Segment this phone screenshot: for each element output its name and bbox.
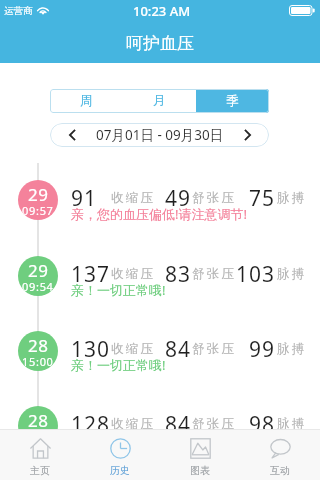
staticText: 收缩压 [111,266,156,282]
staticText: 130 [71,335,111,364]
staticText: 29 [28,183,49,206]
staticText: 月 [153,93,166,109]
staticText: 98 [249,410,276,439]
other: Next period [236,123,258,147]
button[interactable]: 周 [50,89,123,113]
staticText: 128 [71,410,111,439]
staticText: 历史 [110,464,130,477]
staticText: 呵护血压 [126,33,194,54]
button[interactable]: 主页 [0,430,80,480]
staticText: 亲！一切正常哦! [71,431,166,449]
button[interactable]: 28 [0,331,320,407]
button[interactable]: 月 [123,89,196,113]
staticText: 75 [249,184,276,213]
staticText: 脉搏 [277,266,307,282]
staticText: 14:00 [22,429,54,444]
staticText: 91 [71,184,98,213]
staticText: 脉搏 [277,190,307,206]
staticText: 49 [165,184,192,213]
staticText: 84 [165,335,192,364]
staticText: 09:57 [22,203,54,218]
button[interactable]: 28 [0,406,320,480]
staticText: 83 [165,260,192,289]
button[interactable]: 互动 [240,430,320,480]
button[interactable]: 季 [196,89,269,113]
staticText: 舒张压 [192,341,237,357]
staticText: 137 [71,260,111,289]
staticText: 亲！一切正常哦! [71,356,166,374]
staticText: 运营商 [4,5,33,17]
staticText: 脉搏 [277,416,307,432]
staticText: 28 [28,409,49,432]
staticText: 99 [249,335,276,364]
staticText: 亲！一切正常哦! [71,281,166,299]
button[interactable]: 图表 [160,430,240,480]
staticText: 周 [80,93,93,109]
staticText: 舒张压 [192,416,237,432]
staticText: 季 [226,93,239,109]
button[interactable]: 历史 [80,430,160,480]
button[interactable]: Previous period [50,123,269,147]
button[interactable]: 29 [0,256,320,332]
staticText: 15:00 [22,354,54,369]
staticText: 主页 [30,464,50,477]
staticText: 舒张压 [192,190,237,206]
staticText: 脉搏 [277,341,307,357]
staticText: 互动 [270,464,290,477]
staticText: 07月01日 - 09月30日 [96,126,224,144]
staticText: 29 [28,259,49,282]
staticText: 亲，您的血压偏低!请注意调节! [71,205,247,223]
staticText: 图表 [190,464,210,477]
staticText: 103 [236,260,276,289]
staticText: 09:54 [22,279,54,294]
button[interactable]: 29 [0,180,320,256]
staticText: 收缩压 [111,341,156,357]
staticText: 舒张压 [192,266,237,282]
staticText: 84 [165,410,192,439]
other: Previous period [61,123,83,147]
staticText: 28 [28,334,49,357]
staticText: 收缩压 [111,416,156,432]
staticText: 收缩压 [111,190,156,206]
staticText: 10:23 AM [133,2,191,20]
